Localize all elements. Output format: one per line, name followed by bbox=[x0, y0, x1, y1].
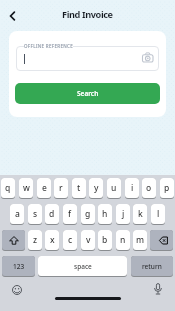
staticText: e bbox=[42, 182, 47, 194]
staticText: p bbox=[164, 182, 170, 194]
button[interactable]: g bbox=[81, 204, 95, 224]
staticText: j bbox=[122, 208, 125, 220]
staticText: b bbox=[102, 234, 108, 246]
button[interactable]: return bbox=[131, 256, 173, 276]
button[interactable]: j bbox=[116, 204, 130, 224]
button[interactable]: o bbox=[142, 178, 156, 198]
button[interactable] bbox=[4, 7, 22, 25]
button[interactable]: 123 bbox=[2, 256, 35, 276]
staticText: l bbox=[157, 208, 160, 220]
staticText: d bbox=[49, 208, 55, 220]
button[interactable]: p bbox=[160, 178, 174, 198]
button[interactable]: q bbox=[1, 178, 15, 198]
staticText: q bbox=[5, 182, 11, 194]
staticText: y bbox=[94, 182, 99, 194]
staticText: r bbox=[59, 182, 63, 194]
staticText: 123 bbox=[13, 262, 25, 271]
button[interactable]: d bbox=[45, 204, 59, 224]
button[interactable]: t bbox=[72, 178, 86, 198]
staticText: space bbox=[74, 262, 92, 271]
button[interactable]: u bbox=[107, 178, 121, 198]
button[interactable]: f bbox=[63, 204, 77, 224]
staticText: Search bbox=[77, 89, 99, 98]
button[interactable] bbox=[153, 283, 163, 296]
staticText: a bbox=[15, 208, 20, 220]
staticText: w bbox=[23, 182, 30, 194]
staticText: m bbox=[136, 234, 145, 246]
button[interactable]: b bbox=[98, 230, 112, 250]
button[interactable]: a bbox=[10, 204, 24, 224]
button[interactable]: space bbox=[38, 256, 127, 276]
button[interactable]: y bbox=[89, 178, 103, 198]
staticText: v bbox=[86, 234, 91, 246]
button[interactable] bbox=[2, 230, 25, 250]
button[interactable]: w bbox=[19, 178, 33, 198]
button[interactable]: c bbox=[63, 230, 77, 250]
button[interactable]: e bbox=[37, 178, 51, 198]
button[interactable] bbox=[16, 46, 159, 71]
button[interactable]: v bbox=[81, 230, 95, 250]
button[interactable]: z bbox=[28, 230, 42, 250]
button[interactable]: h bbox=[98, 204, 112, 224]
button[interactable] bbox=[12, 285, 22, 295]
staticText: z bbox=[33, 234, 38, 246]
button[interactable]: m bbox=[133, 230, 147, 250]
staticText: s bbox=[33, 208, 38, 220]
button[interactable]: l bbox=[151, 204, 165, 224]
button[interactable]: r bbox=[54, 178, 68, 198]
staticText: i bbox=[131, 182, 134, 194]
staticText: x bbox=[50, 234, 55, 246]
button[interactable]: s bbox=[28, 204, 42, 224]
button[interactable]: n bbox=[116, 230, 130, 250]
staticText: o bbox=[146, 182, 152, 194]
button[interactable]: Search bbox=[15, 83, 160, 104]
button[interactable]: x bbox=[45, 230, 59, 250]
staticText: h bbox=[102, 208, 108, 220]
button[interactable] bbox=[150, 230, 173, 250]
button[interactable]: i bbox=[125, 178, 139, 198]
staticText: OFFLINE REFERENCE bbox=[24, 43, 73, 49]
staticText: t bbox=[77, 182, 81, 194]
staticText: u bbox=[111, 182, 117, 194]
staticText: n bbox=[120, 234, 126, 246]
staticText: g bbox=[85, 208, 91, 220]
staticText: return bbox=[142, 262, 162, 271]
staticText: k bbox=[138, 208, 143, 220]
staticText: Find Invoice bbox=[62, 8, 113, 21]
staticText: c bbox=[68, 234, 73, 246]
button[interactable]: k bbox=[133, 204, 147, 224]
staticText: f bbox=[68, 208, 72, 220]
